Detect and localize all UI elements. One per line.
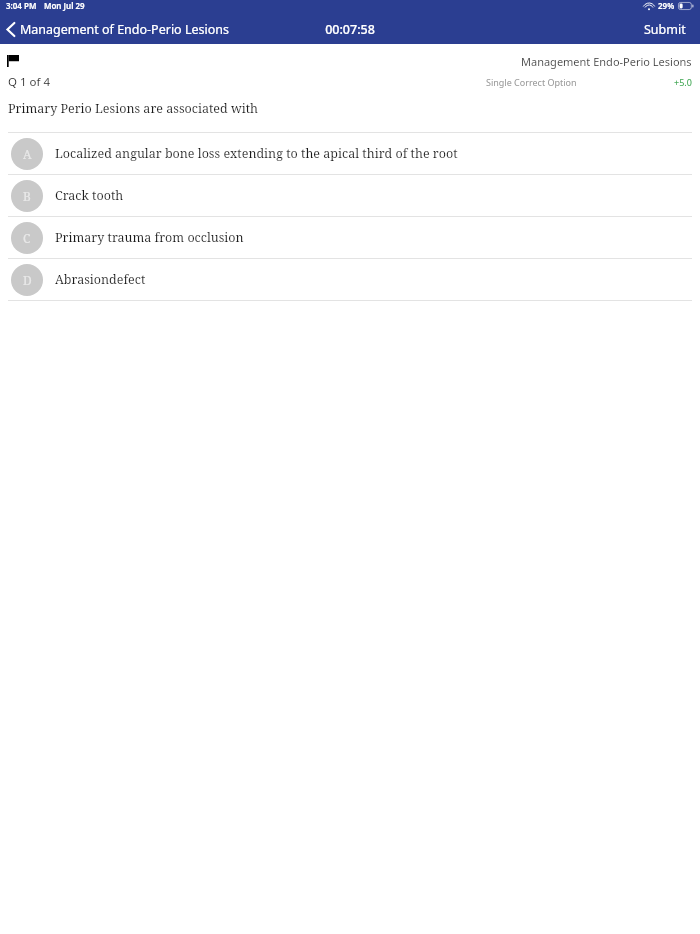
staticText: C xyxy=(23,230,31,246)
staticText: Abrasiondefect xyxy=(55,271,146,288)
staticText: 3:04 PM xyxy=(6,0,37,11)
staticText: Single Correct Option xyxy=(486,76,577,88)
button[interactable]: Management of Endo-Perio Lesions xyxy=(0,17,238,42)
staticText: A xyxy=(23,146,32,162)
staticText: Primary Perio Lesions are associated wit… xyxy=(8,100,259,117)
staticText: 00:07:58 xyxy=(325,21,375,38)
staticText: Management of Endo-Perio Lesions xyxy=(20,21,230,38)
button[interactable]: B xyxy=(0,175,700,216)
staticText: +5.0 xyxy=(674,76,692,88)
button[interactable]: Flag question xyxy=(3,51,23,71)
staticText: Submit xyxy=(644,21,686,38)
button[interactable]: C xyxy=(0,217,700,258)
button[interactable]: D xyxy=(0,259,700,300)
staticText: D xyxy=(23,272,32,288)
staticText: Primary trauma from occlusion xyxy=(55,229,244,246)
staticText: 29% xyxy=(658,0,675,11)
button[interactable]: Submit xyxy=(630,16,700,43)
staticText: Localized angular bone loss extending to… xyxy=(55,145,458,162)
staticText: Management Endo-Perio Lesions xyxy=(521,54,692,69)
staticText: B xyxy=(23,188,31,204)
staticText: Crack tooth xyxy=(55,187,124,204)
button[interactable]: A xyxy=(0,133,700,174)
staticText: Q 1 of 4 xyxy=(8,74,51,90)
staticText: Mon Jul 29 xyxy=(44,0,85,11)
